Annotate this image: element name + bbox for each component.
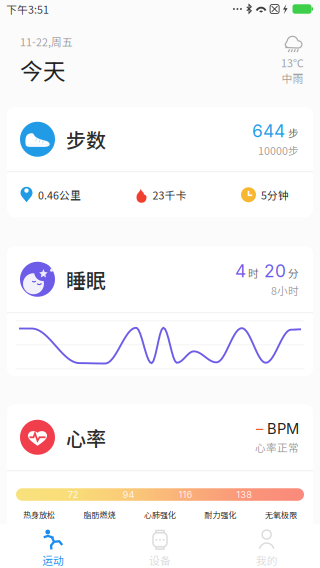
staticText: 0.46公里 [38, 187, 81, 202]
staticText: 耐力强化 [204, 509, 236, 520]
staticText: 步数 [66, 125, 106, 154]
button[interactable]: 心率 [7, 404, 313, 530]
staticText: 中雨 [281, 70, 303, 86]
staticText: 23千卡 [152, 187, 186, 202]
staticText: 我的 [256, 552, 278, 568]
staticText: 644 [252, 121, 285, 142]
staticText: 脂肪燃烧 [83, 509, 115, 520]
staticText: 设备 [149, 552, 171, 568]
staticText: 138 [236, 489, 252, 500]
staticText: 分 [288, 265, 299, 280]
staticText: 10000步 [258, 142, 299, 158]
staticText: 下午3:51 [6, 1, 49, 17]
staticText: 热身放松 [23, 509, 55, 520]
staticText: 心肺强化 [144, 509, 176, 520]
staticText: 116 [178, 489, 192, 500]
button[interactable]: 睡眠 [7, 246, 313, 376]
staticText: 时 [248, 265, 259, 280]
staticText: 步 [288, 125, 299, 140]
staticText: 5分钟 [261, 187, 289, 202]
staticText: 8小时 [271, 282, 299, 298]
staticText: 心率 [66, 423, 106, 452]
button[interactable]: 设备 [107, 529, 213, 568]
staticText: 无氧极限 [265, 509, 297, 520]
staticText: – [256, 420, 263, 437]
button[interactable]: 步数 [7, 107, 313, 217]
staticText: 72 [68, 489, 79, 500]
staticText: 运动 [42, 552, 64, 568]
staticText: 今天 [20, 53, 66, 86]
staticText: 11-22,周五 [20, 34, 73, 49]
staticText: BPM [267, 420, 299, 437]
staticText: 4 [235, 261, 246, 282]
staticText: 94 [123, 489, 135, 500]
staticText: 心率正常 [255, 439, 299, 455]
staticText: 13℃ [281, 55, 304, 70]
staticText: 睡眠 [66, 265, 106, 294]
button[interactable]: 运动 [0, 529, 107, 568]
button[interactable]: 我的 [213, 529, 320, 568]
staticText: 20 [264, 261, 286, 282]
